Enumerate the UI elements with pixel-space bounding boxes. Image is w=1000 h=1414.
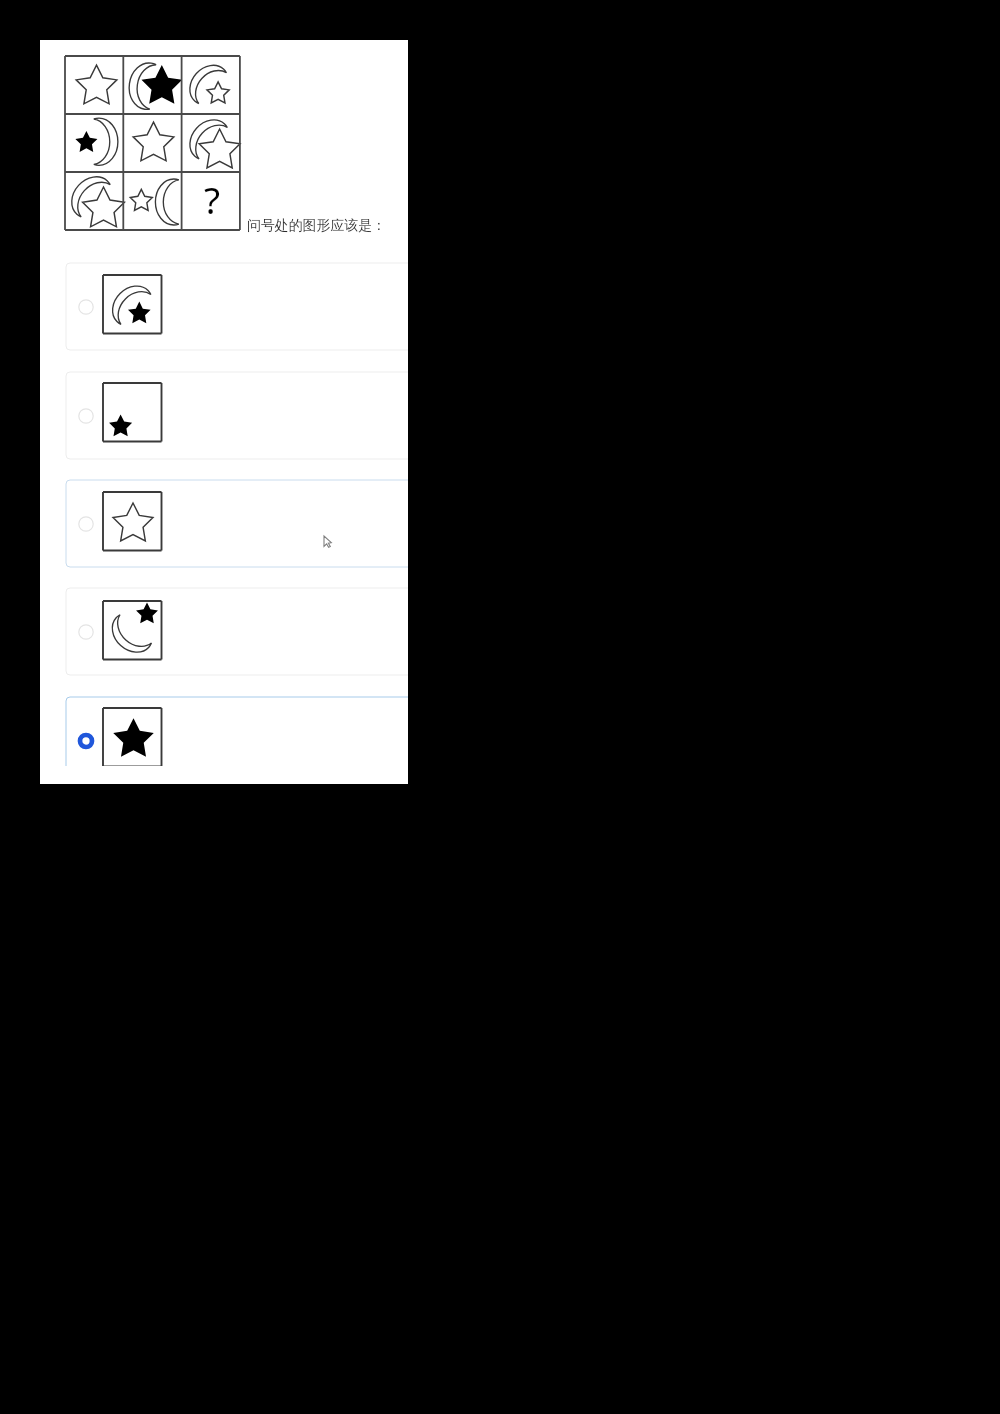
button[interactable]: Option D: crescent with filled star abov…	[66, 588, 408, 675]
staticText: 问号处的图形应该是：	[247, 217, 386, 235]
button[interactable]: Option B: small filled star	[66, 372, 408, 459]
button[interactable]: Option E: large filled star, selected	[66, 697, 408, 784]
button[interactable]: Option A: crescent with filled star	[66, 263, 408, 350]
staticText: ?	[204, 174, 221, 224]
button[interactable]: Option C: outlined star	[66, 480, 408, 567]
